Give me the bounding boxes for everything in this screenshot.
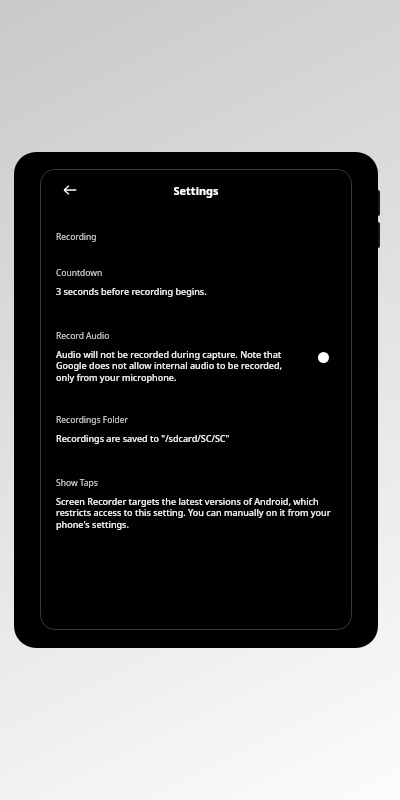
staticText: Countdown [56, 267, 103, 279]
staticText: Recordings are saved to "/sdcard/SC/SC" [56, 432, 230, 444]
staticText: Audio will not be recorded during captur… [56, 348, 302, 384]
button[interactable]: Back [56, 176, 84, 204]
staticText: Recordings Folder [56, 414, 129, 426]
staticText: Record Audio [56, 330, 110, 342]
button[interactable]: Recordings Folder [56, 414, 336, 444]
button[interactable]: Show Taps [56, 477, 336, 531]
staticText: Show Taps [56, 477, 98, 489]
button[interactable]: Record Audio [56, 330, 336, 384]
staticText: Recording [56, 231, 97, 243]
staticText: 3 seconds before recording begins. [56, 285, 207, 297]
staticText: Settings [173, 183, 219, 198]
staticText: Screen Recorder targets the latest versi… [56, 495, 336, 531]
button[interactable]: Countdown [56, 267, 336, 297]
